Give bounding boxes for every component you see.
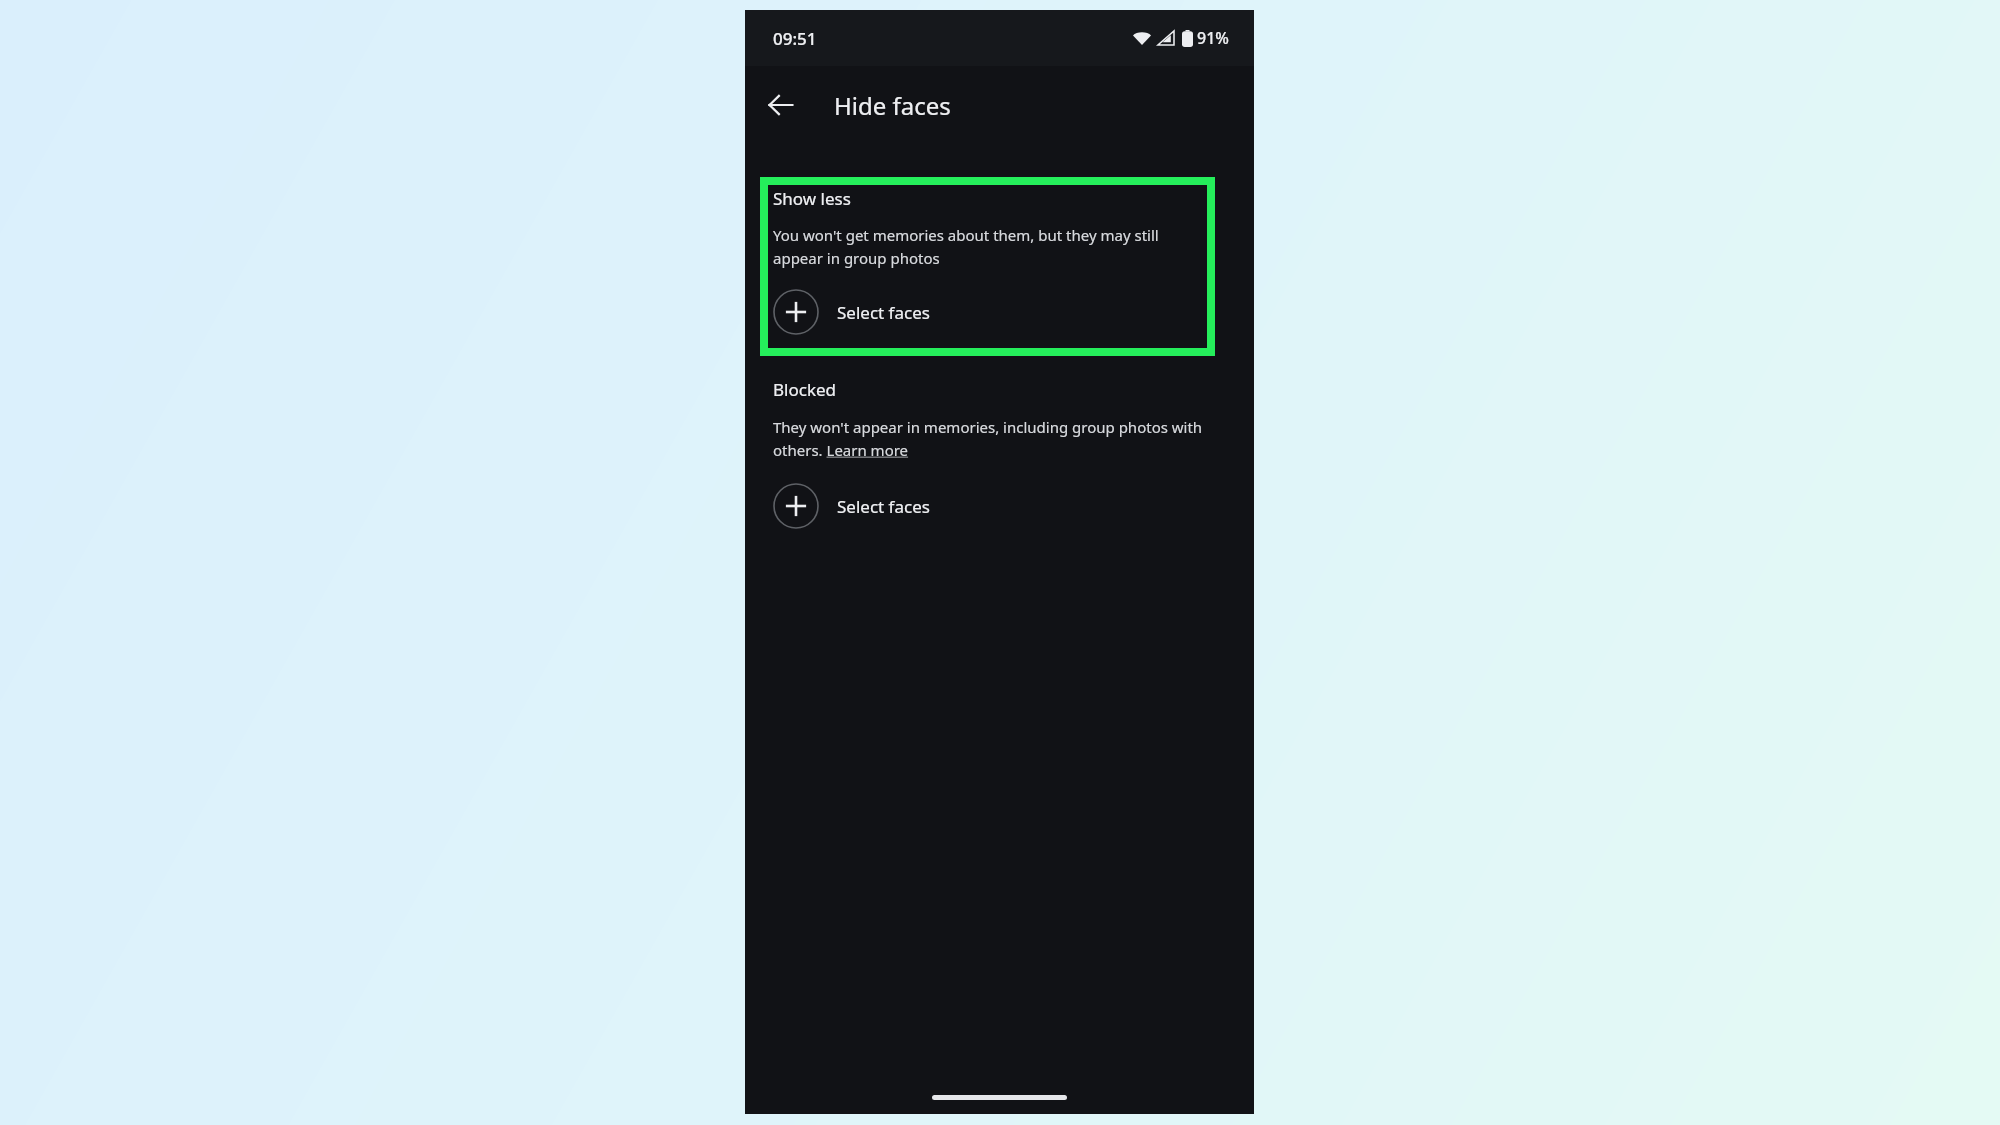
staticText: Blocked <box>773 378 837 401</box>
staticText: Show less <box>773 187 851 210</box>
button[interactable]: Select faces <box>773 284 930 340</box>
staticText: You won't get memories about them, but t… <box>773 225 1205 268</box>
staticText: Select faces <box>837 495 930 518</box>
staticText: They won't appear in memories, including… <box>773 417 1213 460</box>
staticText: Select faces <box>837 301 930 324</box>
staticText: 91% <box>1197 27 1229 49</box>
button[interactable]: Show less <box>768 185 1207 348</box>
staticText: 09:51 <box>773 27 817 50</box>
button[interactable]: Select faces <box>773 478 930 534</box>
button[interactable]: Back <box>757 81 805 129</box>
staticText: Hide faces <box>834 89 951 122</box>
